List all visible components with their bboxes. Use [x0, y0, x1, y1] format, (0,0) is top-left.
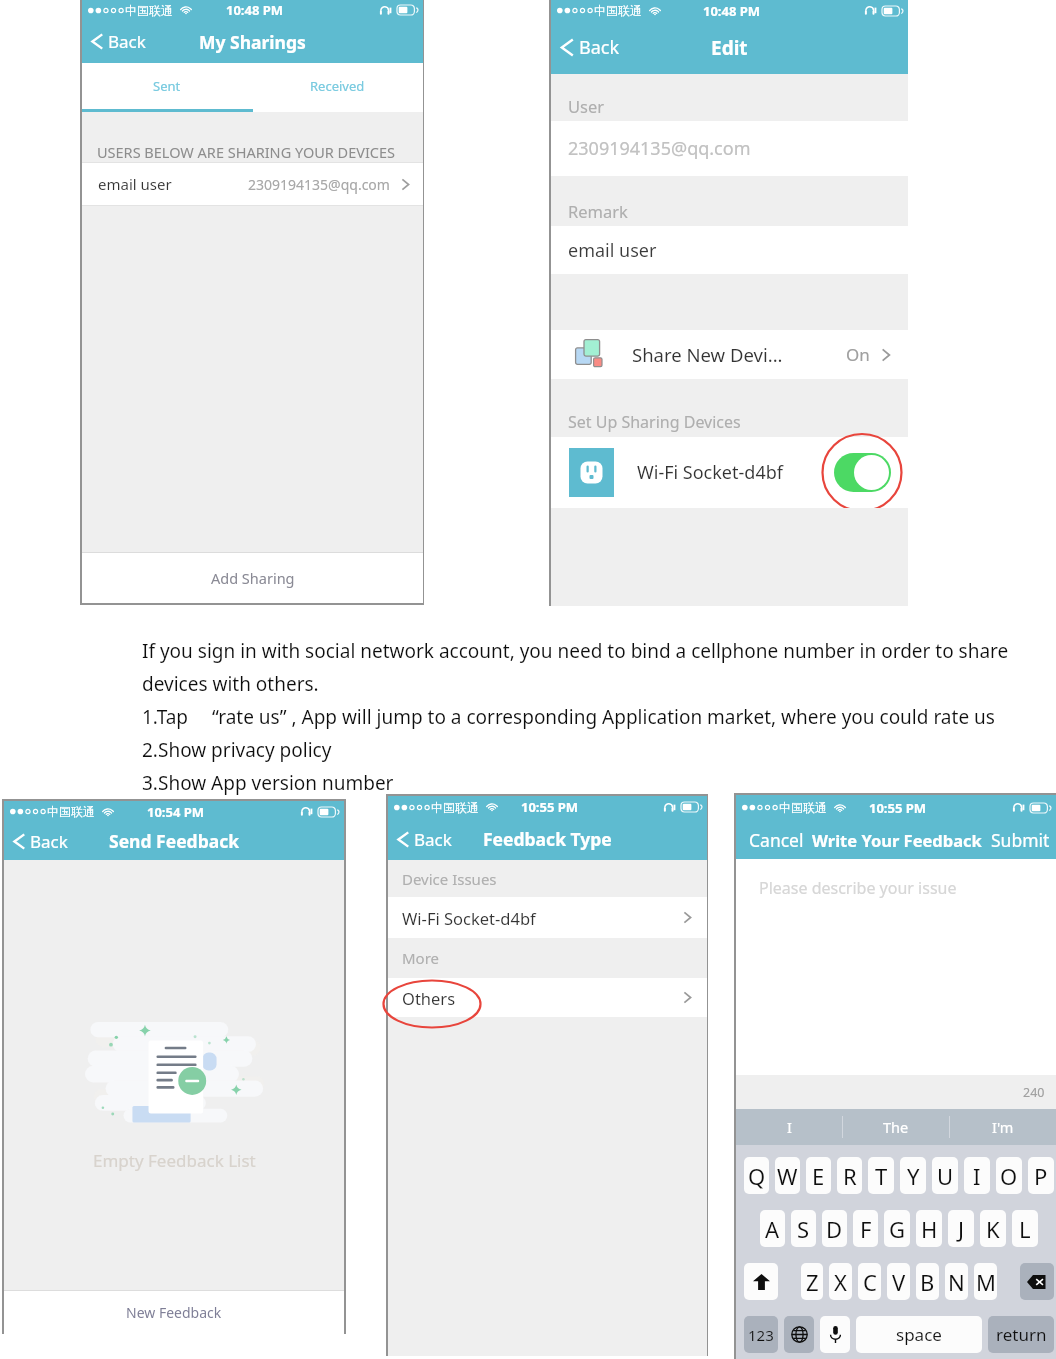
button[interactable]: Sent	[82, 63, 252, 109]
staticText: New Feedback	[126, 1303, 222, 1322]
button[interactable]: L	[1012, 1210, 1038, 1247]
button[interactable]: I	[736, 1109, 842, 1145]
button[interactable]: G	[884, 1210, 910, 1247]
button[interactable]: I	[964, 1157, 990, 1194]
button[interactable]: O	[996, 1157, 1022, 1194]
staticText: Edit	[711, 35, 748, 61]
staticText: P	[1034, 1161, 1048, 1191]
button[interactable]: Q	[744, 1157, 769, 1194]
staticText: Q	[748, 1161, 766, 1191]
button[interactable]: B	[916, 1263, 939, 1300]
staticText: Others	[402, 987, 456, 1009]
button[interactable]: T	[868, 1157, 894, 1194]
staticText: 10:55 PM	[869, 799, 927, 817]
staticText: Wi-Fi Socket-d4bf	[637, 460, 783, 485]
staticText: F	[860, 1214, 872, 1244]
button[interactable]: Wi-Fi Socket-d4bf	[388, 897, 707, 938]
staticText: G	[889, 1214, 906, 1244]
button[interactable]: Cancel	[736, 828, 804, 852]
button[interactable]: Y	[900, 1157, 926, 1194]
button[interactable]: I'm	[950, 1109, 1056, 1145]
button[interactable]: Change language	[784, 1316, 814, 1353]
button[interactable]: U	[932, 1157, 958, 1194]
button[interactable]: Back	[4, 822, 76, 860]
staticText: U	[937, 1161, 954, 1191]
staticText: T	[875, 1161, 888, 1191]
button[interactable]: Wi-Fi Socket-d4bf	[551, 437, 908, 508]
button[interactable]: K	[980, 1210, 1006, 1247]
button[interactable]: 123	[744, 1316, 778, 1353]
button[interactable]: A	[760, 1210, 785, 1247]
staticText: C	[863, 1267, 877, 1297]
button[interactable]: Submit	[991, 828, 1056, 852]
staticText: 2309194135@qq.com	[248, 175, 390, 194]
button[interactable]: Backspace	[1020, 1263, 1054, 1300]
staticText: R	[843, 1161, 857, 1191]
button[interactable]: Others	[388, 978, 707, 1017]
staticText: H	[921, 1214, 938, 1244]
button[interactable]: F	[853, 1210, 878, 1247]
button[interactable]: P	[1028, 1157, 1054, 1194]
button[interactable]: N	[945, 1263, 968, 1300]
button[interactable]: Shift	[744, 1263, 778, 1300]
staticText: Remark	[568, 200, 628, 222]
staticText: 中国联通	[431, 800, 479, 815]
button[interactable]: Received	[252, 63, 423, 109]
staticText: Z	[806, 1267, 819, 1297]
button[interactable]: M	[974, 1263, 997, 1300]
staticText: 123	[748, 1325, 774, 1345]
staticText: More	[402, 948, 440, 968]
button[interactable]: C	[858, 1263, 881, 1300]
staticText: Device Issues	[402, 869, 497, 889]
button[interactable]: Add Sharing	[82, 553, 423, 603]
button[interactable]: S	[791, 1210, 816, 1247]
staticText: Back	[30, 830, 68, 853]
button[interactable]: X	[829, 1263, 852, 1300]
staticText: E	[812, 1161, 825, 1191]
button[interactable]: Share New Devi...	[551, 330, 908, 379]
button[interactable]: return	[988, 1316, 1054, 1353]
staticText: D	[826, 1214, 843, 1244]
staticText: K	[986, 1214, 1000, 1244]
button[interactable]: H	[916, 1210, 942, 1247]
staticText: 10:55 PM	[521, 798, 579, 816]
staticText: L	[1019, 1214, 1031, 1244]
button[interactable]: New Feedback	[4, 1291, 344, 1334]
button[interactable]: Dictation	[820, 1316, 850, 1353]
staticText: Empty Feedback List	[93, 1149, 256, 1172]
button[interactable]: Back	[82, 20, 154, 63]
staticText: Feedback Type	[483, 827, 612, 851]
button[interactable]: Z	[801, 1263, 823, 1300]
button[interactable]: space	[856, 1316, 982, 1353]
button[interactable]: E	[806, 1157, 831, 1194]
staticText: I	[973, 1161, 981, 1191]
button[interactable]: D	[822, 1210, 847, 1247]
staticText: Wi-Fi Socket-d4bf	[402, 907, 536, 929]
staticText: Back	[414, 828, 452, 851]
button[interactable]: Back	[551, 21, 628, 74]
staticText: 240	[1023, 1084, 1045, 1101]
button[interactable]: R	[837, 1157, 862, 1194]
staticText: Back	[579, 35, 620, 60]
staticText: 中国联通	[779, 800, 827, 815]
button[interactable]: Back	[388, 818, 460, 860]
staticText: Write Your Feedback	[812, 829, 982, 851]
staticText: O	[1000, 1161, 1018, 1191]
button[interactable]: email user	[82, 163, 423, 205]
button[interactable]: The	[843, 1109, 949, 1145]
staticText: 2309194135@qq.com	[568, 136, 751, 161]
button[interactable]: W	[775, 1157, 800, 1194]
staticText: The	[883, 1117, 909, 1137]
staticText: S	[797, 1214, 810, 1244]
staticText: V	[892, 1267, 906, 1297]
button[interactable]: V	[887, 1263, 910, 1300]
staticText: B	[920, 1267, 935, 1297]
button[interactable]: J	[948, 1210, 974, 1247]
staticText: 中国联通	[594, 3, 642, 18]
staticText: Y	[907, 1161, 920, 1191]
staticText: Add Sharing	[211, 568, 295, 588]
staticText: J	[958, 1214, 965, 1244]
staticText: Sent	[153, 77, 181, 95]
staticText: I	[787, 1117, 792, 1137]
button[interactable]: Sharing toggle	[834, 453, 891, 492]
